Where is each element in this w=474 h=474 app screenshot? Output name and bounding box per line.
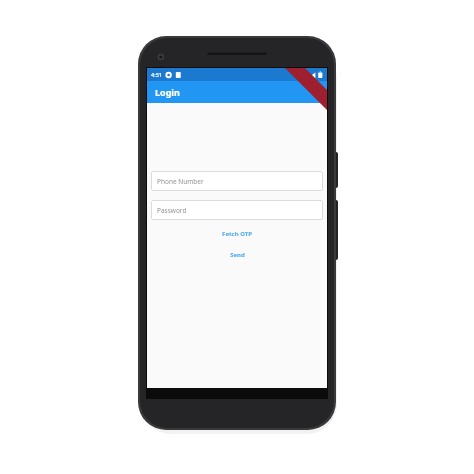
button[interactable]: Phone Number xyxy=(151,171,323,191)
button[interactable]: Send xyxy=(147,247,327,263)
staticText: 4:51 xyxy=(151,71,162,78)
other: Power button xyxy=(333,152,338,188)
staticText: Login xyxy=(155,86,180,98)
button[interactable]: Fetch OTP xyxy=(147,226,327,242)
staticText: Password xyxy=(157,206,187,215)
button[interactable]: Password xyxy=(151,200,323,220)
staticText: Fetch OTP xyxy=(222,230,252,238)
staticText: Send xyxy=(230,251,245,259)
other: Volume buttons xyxy=(333,200,338,260)
staticText: Phone Number xyxy=(157,177,204,186)
